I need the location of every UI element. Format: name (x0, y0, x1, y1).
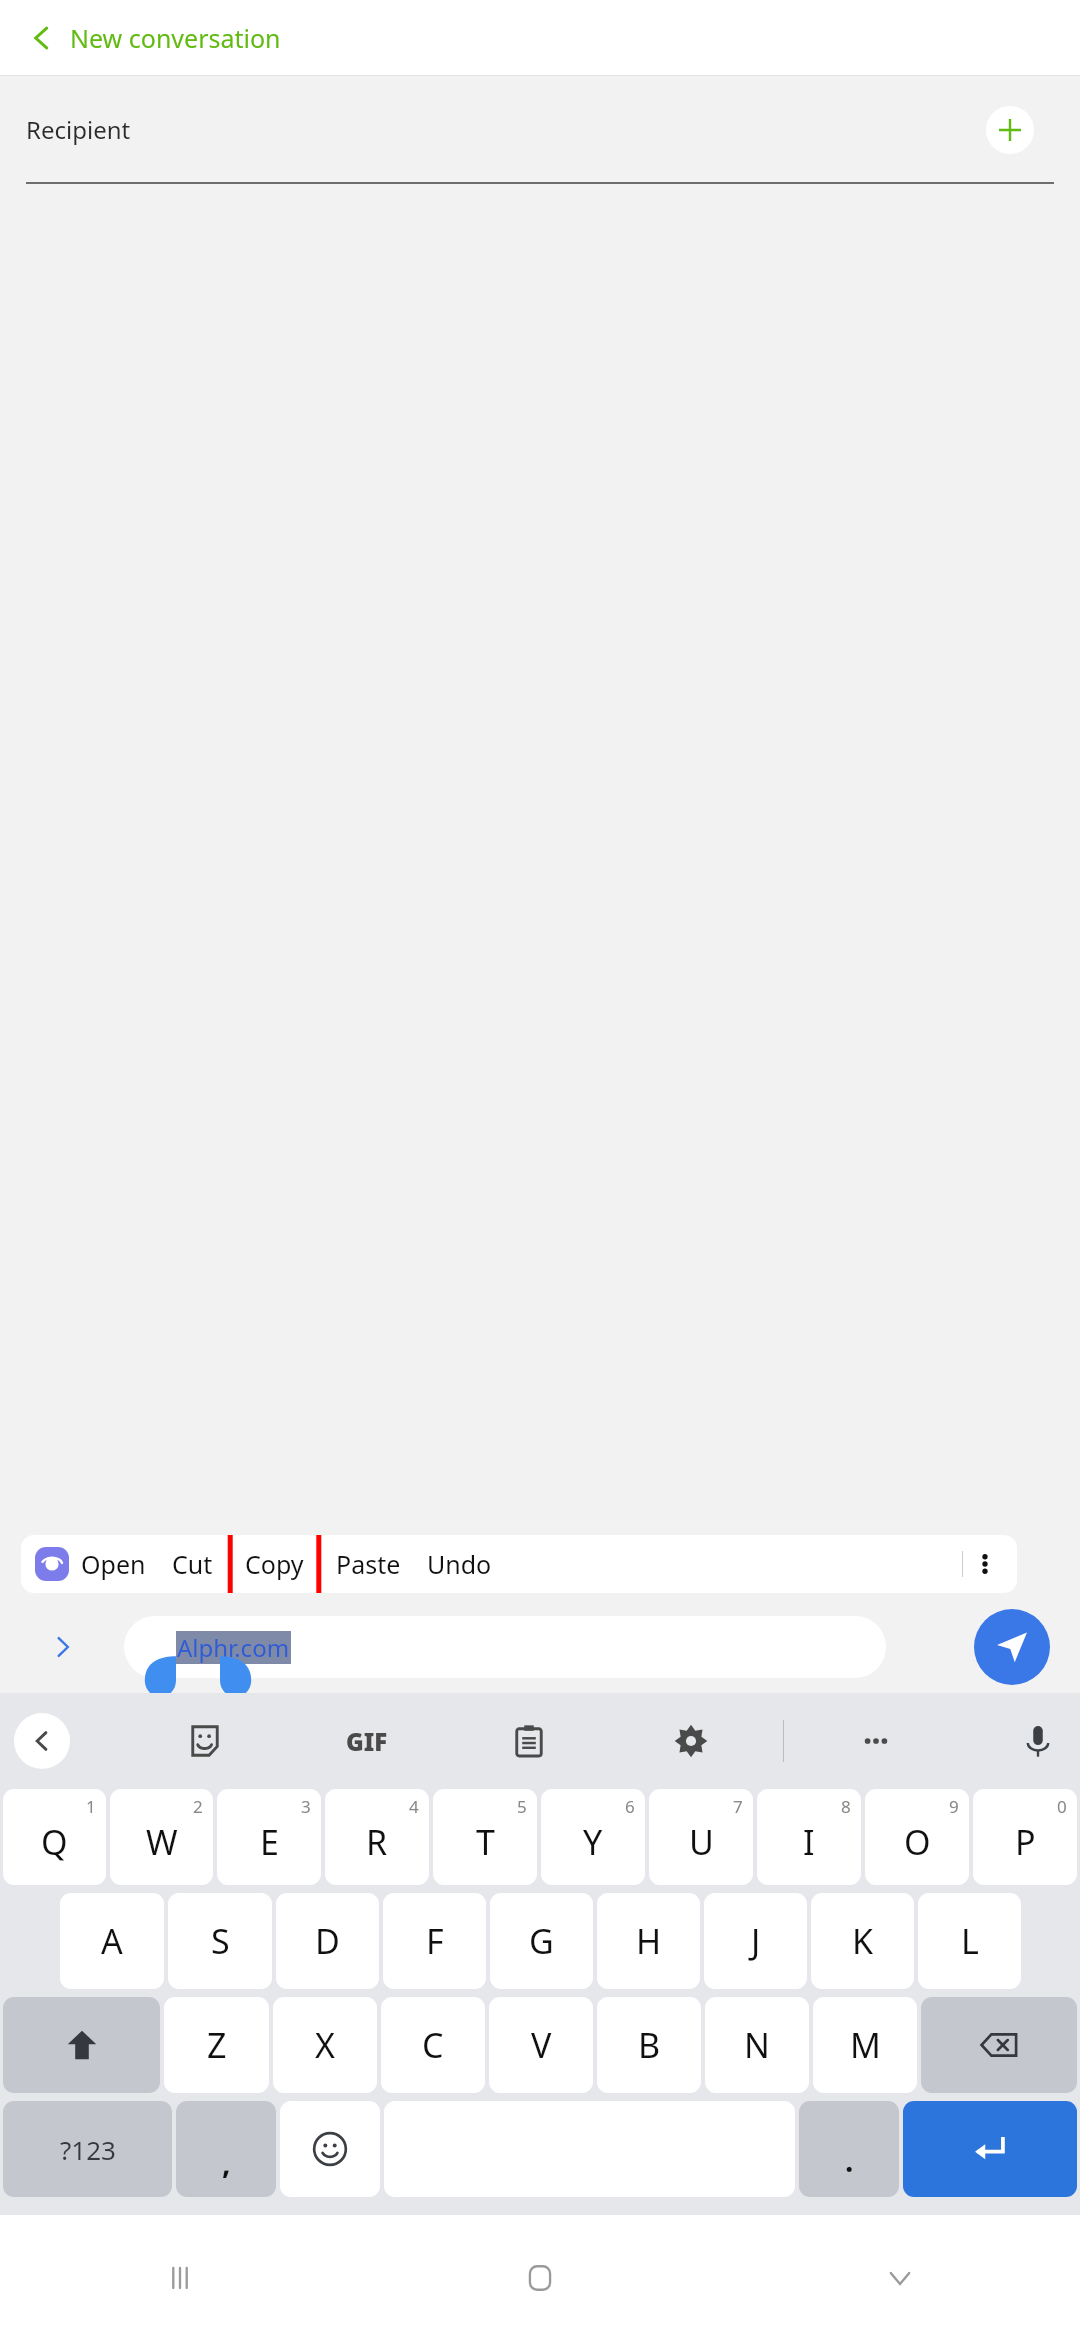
staticText: 9 (949, 1795, 959, 1818)
button[interactable]: Enter (903, 2101, 1077, 2197)
button[interactable]: Voice input (1010, 1713, 1066, 1769)
button[interactable]: Copy (233, 1543, 316, 1585)
button[interactable]: Settings (663, 1713, 719, 1769)
staticText: U (689, 1819, 714, 1865)
staticText: Y (583, 1819, 603, 1865)
staticText: ?123 (60, 2132, 116, 2167)
staticText: Recipient (26, 113, 131, 146)
button[interactable]: Z (164, 1997, 269, 2093)
button[interactable]: Home (360, 2215, 720, 2340)
button[interactable]: GIF (339, 1713, 395, 1769)
staticText: . (845, 2140, 854, 2181)
staticText: Undo (427, 1547, 492, 1581)
staticText: O (904, 1819, 931, 1865)
button[interactable]: N (705, 1997, 809, 2093)
staticText: Cut (172, 1547, 213, 1581)
button[interactable]: Emoji (280, 2101, 380, 2197)
button[interactable]: K (811, 1893, 914, 1989)
button[interactable]: Undo (427, 1547, 492, 1581)
staticText: 4 (409, 1795, 419, 1818)
staticText: 5 (517, 1795, 527, 1818)
button[interactable]: Backspace (921, 1997, 1077, 2093)
button[interactable]: More options (963, 1535, 1007, 1593)
button[interactable]: V (489, 1997, 593, 2093)
staticText: L (961, 1918, 979, 1964)
staticText: Z (207, 2022, 227, 2068)
button[interactable]: ?123 (3, 2101, 172, 2197)
button[interactable]: R (325, 1789, 429, 1885)
staticText: 3 (301, 1795, 311, 1818)
button[interactable]: O (865, 1789, 969, 1885)
staticText: A (101, 1918, 123, 1964)
staticText: C (422, 2022, 444, 2068)
button[interactable]: , (176, 2101, 276, 2197)
staticText: 8 (841, 1795, 851, 1818)
button[interactable]: F (383, 1893, 486, 1989)
button[interactable]: M (813, 1997, 917, 2093)
staticText: Alphr.com (177, 1631, 290, 1664)
button[interactable]: X (273, 1997, 377, 2093)
button[interactable]: Back (14, 10, 70, 66)
staticText: H (636, 1918, 662, 1964)
button[interactable]: E (217, 1789, 321, 1885)
staticText: X (315, 2022, 335, 2068)
button[interactable]: Alphr.com (124, 1616, 886, 1678)
button[interactable]: S (168, 1893, 272, 1989)
staticText: New conversation (70, 21, 281, 55)
button[interactable]: H (597, 1893, 700, 1989)
button[interactable]: J (704, 1893, 807, 1989)
button[interactable]: Q (3, 1789, 106, 1885)
button[interactable]: P (973, 1789, 1077, 1885)
button[interactable]: Clipboard (501, 1713, 557, 1769)
button[interactable]: A (60, 1893, 164, 1989)
staticText: N (744, 2022, 770, 2068)
staticText: K (852, 1918, 874, 1964)
button[interactable]: I (757, 1789, 861, 1885)
button[interactable]: Open with browser (35, 1547, 69, 1581)
staticText: W (146, 1819, 178, 1865)
button[interactable]: Recents (0, 2215, 360, 2340)
staticText: P (1015, 1819, 1036, 1865)
staticText: GIF (346, 1725, 388, 1758)
staticText: G (529, 1918, 554, 1964)
staticText: 2 (193, 1795, 203, 1818)
staticText: E (260, 1819, 279, 1865)
button[interactable]: Open (81, 1547, 146, 1581)
staticText: Q (41, 1819, 68, 1865)
button[interactable]: L (918, 1893, 1021, 1989)
button[interactable]: T (433, 1789, 537, 1885)
staticText: 6 (625, 1795, 635, 1818)
staticText: R (366, 1819, 388, 1865)
staticText: 1 (86, 1795, 96, 1818)
button[interactable]: Hide keyboard (720, 2215, 1080, 2340)
button[interactable]: Cut (172, 1547, 213, 1581)
button[interactable]: Stickers (177, 1713, 233, 1769)
button[interactable]: D (276, 1893, 379, 1989)
button[interactable]: Expand (46, 1630, 80, 1664)
staticText: S (211, 1918, 230, 1964)
staticText: B (638, 2022, 661, 2068)
button[interactable]: Shift (3, 1997, 160, 2093)
button[interactable]: Collapse toolbar (14, 1713, 70, 1769)
button[interactable]: B (597, 1997, 701, 2093)
button[interactable]: Paste (336, 1547, 401, 1581)
button[interactable]: C (381, 1997, 485, 2093)
staticText: D (315, 1918, 340, 1964)
staticText: 0 (1057, 1795, 1067, 1818)
staticText: Open (81, 1547, 146, 1581)
staticText: I (803, 1819, 815, 1865)
staticText: V (531, 2022, 552, 2068)
staticText: F (426, 1918, 444, 1964)
button[interactable]: Send (974, 1609, 1050, 1685)
button[interactable]: . (799, 2101, 899, 2197)
button[interactable]: U (649, 1789, 753, 1885)
staticText: , (222, 2142, 231, 2183)
button[interactable]: More (848, 1713, 904, 1769)
button[interactable]: Add recipient (986, 106, 1034, 154)
button[interactable]: W (110, 1789, 213, 1885)
staticText: Copy (245, 1547, 304, 1581)
button[interactable]: G (490, 1893, 593, 1989)
button[interactable]: Y (541, 1789, 645, 1885)
staticText: M (850, 2022, 881, 2068)
